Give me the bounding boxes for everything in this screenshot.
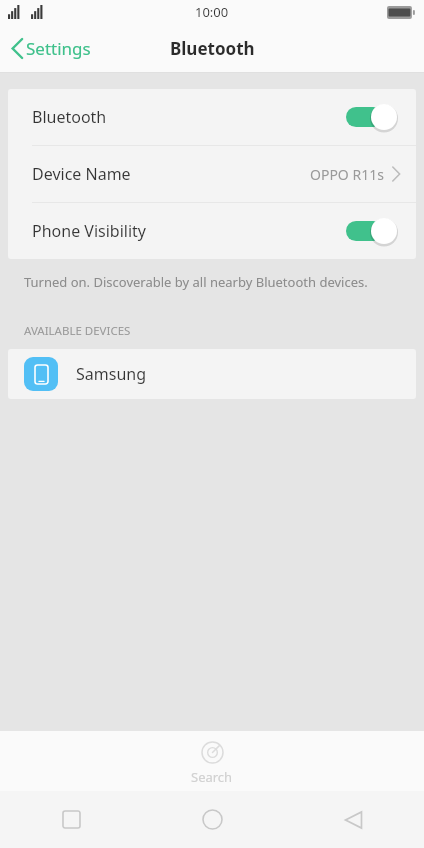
staticText: Samsung — [76, 363, 147, 385]
button[interactable]: Phone Visibility — [8, 203, 416, 259]
button[interactable]: Home — [142, 791, 283, 848]
staticText: Bluetooth — [170, 37, 255, 60]
button[interactable]: Toggle — [346, 217, 398, 245]
staticText: AVAILABLE DEVICES — [24, 323, 131, 339]
button[interactable]: Toggle — [346, 103, 398, 131]
button[interactable]: Settings — [0, 31, 103, 66]
staticText: OPPO R11s — [310, 165, 384, 184]
staticText: Settings — [26, 37, 91, 60]
button[interactable]: Bluetooth — [8, 89, 416, 145]
staticText: Bluetooth — [32, 106, 107, 128]
staticText: Phone Visibility — [32, 220, 147, 242]
button[interactable]: Search — [0, 731, 424, 791]
button[interactable]: Recents — [0, 791, 142, 848]
staticText: 10:00 — [195, 3, 229, 21]
staticText: Search — [191, 768, 233, 786]
button[interactable]: Device Name — [8, 146, 416, 202]
button[interactable]: Samsung — [8, 349, 416, 399]
button[interactable]: Back — [283, 791, 424, 848]
staticText: Turned on. Discoverable by all nearby Bl… — [24, 273, 368, 291]
staticText: Device Name — [32, 163, 131, 185]
